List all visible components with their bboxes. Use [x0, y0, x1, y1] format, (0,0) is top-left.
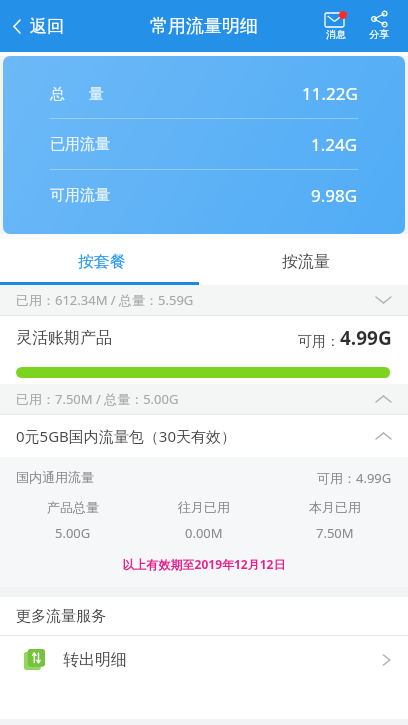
staticText: 以上有效期至2019年12月12日	[0, 556, 408, 572]
button[interactable]: 已用：612.34M / 总量：5.59G	[0, 285, 408, 315]
staticText: 11.22G	[302, 82, 358, 105]
staticText: 总 量	[50, 83, 104, 103]
button[interactable]: 消息	[314, 9, 358, 43]
button[interactable]: 转出明细	[0, 636, 408, 683]
staticText: 返回	[30, 16, 64, 37]
staticText: 灵活账期产品	[16, 328, 112, 348]
staticText: 按流量	[282, 252, 330, 272]
staticText: 常用流量明细	[150, 15, 258, 38]
button[interactable]: 已用：7.50M / 总量：5.00G	[0, 384, 408, 414]
staticText: 消息	[326, 28, 346, 41]
button[interactable]: 返回	[4, 8, 72, 45]
staticText: 转出明细	[63, 650, 127, 670]
staticText: 可用：	[298, 333, 340, 351]
staticText: 已用：7.50M / 总量：5.00G	[16, 390, 179, 408]
other: 收起	[375, 431, 392, 441]
staticText: 国内通用流量	[16, 469, 94, 485]
staticText: 0.00M	[185, 524, 223, 542]
button[interactable]: 分享	[358, 9, 400, 43]
staticText: 可用流量	[50, 186, 110, 205]
button[interactable]: 按套餐	[0, 239, 204, 285]
staticText: 可用：4.99G	[317, 469, 392, 487]
staticText: 本月已用	[309, 499, 361, 515]
staticText: 已用流量	[50, 135, 110, 154]
staticText: 按套餐	[78, 252, 126, 272]
button[interactable]: 按流量	[204, 239, 408, 285]
other: 展开	[375, 295, 392, 305]
staticText: 往月已用	[178, 499, 230, 515]
other: 收起	[375, 394, 392, 404]
staticText: 分享	[369, 28, 389, 41]
staticText: 1.24G	[311, 133, 358, 156]
staticText: 更多流量服务	[16, 607, 106, 626]
staticText: 0元5GB国内流量包（30天有效）	[16, 426, 236, 446]
button[interactable]: 0元5GB国内流量包（30天有效）	[0, 415, 408, 457]
staticText: 5.00G	[55, 524, 91, 542]
staticText: 7.50M	[316, 524, 354, 542]
staticText: 9.98G	[311, 184, 358, 207]
staticText: 4.99G	[340, 325, 392, 351]
button[interactable]: 灵活账期产品	[0, 316, 408, 360]
staticText: 已用：612.34M / 总量：5.59G	[16, 291, 194, 309]
staticText: 产品总量	[47, 499, 99, 515]
